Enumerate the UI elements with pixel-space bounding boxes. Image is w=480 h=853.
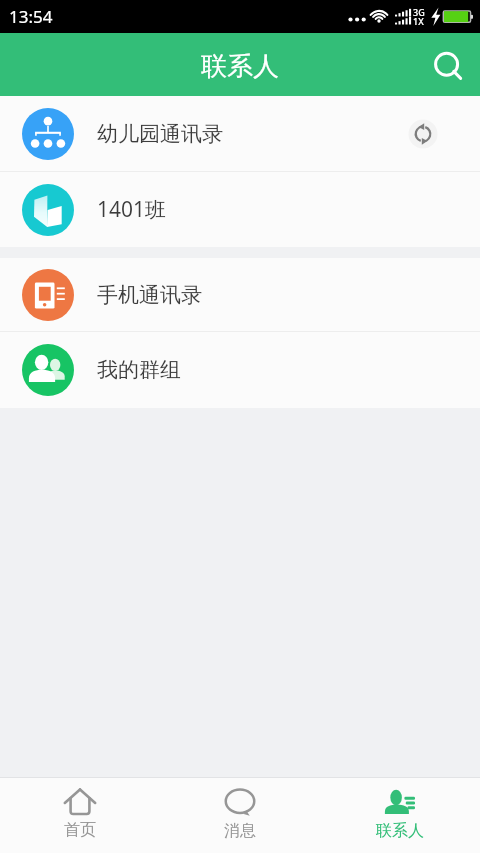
staticText: 幼儿园通讯录 [97, 121, 223, 147]
button[interactable]: Search [422, 36, 480, 94]
staticText: 联系人 [201, 50, 279, 83]
staticText: 首页 [64, 820, 96, 840]
staticText: 1X [413, 15, 424, 27]
staticText: 我的群组 [97, 357, 181, 383]
staticText: 消息 [224, 821, 256, 841]
staticText: 3G [413, 6, 425, 18]
staticText: 13:54 [9, 5, 53, 28]
button[interactable]: 消息 [160, 777, 320, 853]
button[interactable]: Sync [405, 116, 441, 152]
button[interactable]: 首页 [0, 777, 160, 853]
button[interactable]: 1401班 [0, 172, 480, 247]
staticText: 1401班 [97, 195, 167, 224]
button[interactable]: 幼儿园通讯录 [0, 96, 480, 171]
staticText: 联系人 [376, 821, 424, 841]
button[interactable]: 我的群组 [0, 332, 480, 408]
button[interactable]: 手机通讯录 [0, 258, 480, 331]
button[interactable]: 联系人 [320, 777, 480, 853]
staticText: 手机通讯录 [97, 282, 202, 308]
